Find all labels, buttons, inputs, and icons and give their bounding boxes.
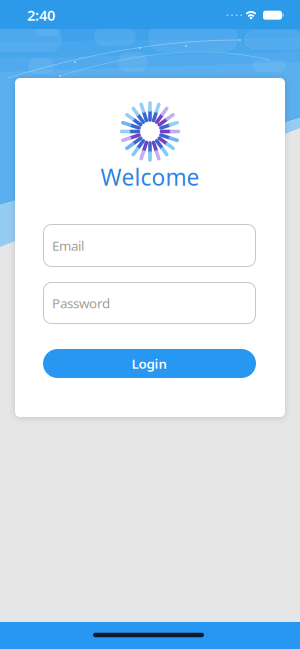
staticText: Welcome	[100, 162, 199, 192]
button[interactable]: Login	[43, 349, 256, 378]
staticText: Login	[131, 355, 167, 372]
staticText: Password	[52, 294, 110, 312]
textField[interactable]: Email	[52, 237, 256, 254]
staticText: 2:40	[27, 5, 55, 25]
secureTextField[interactable]: Password	[52, 294, 256, 312]
staticText: Email	[52, 237, 84, 254]
